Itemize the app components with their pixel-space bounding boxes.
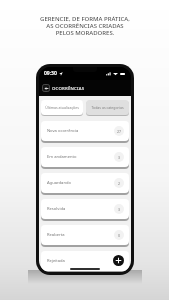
staticText: GERENCIE, DE FORMA PRÁTICA, AS OCORRÊNCI… bbox=[40, 15, 130, 37]
button[interactable]: Rejeitada bbox=[41, 251, 129, 271]
staticText: Resolvida bbox=[47, 206, 66, 212]
button[interactable]: Nova ocorrência bbox=[41, 121, 129, 141]
staticText: 1 bbox=[118, 259, 121, 264]
button[interactable]: Últimas atualizações bbox=[41, 100, 83, 115]
button[interactable]: Em andamento bbox=[41, 147, 129, 167]
staticText: 27 bbox=[117, 129, 122, 134]
button[interactable]: Aguardando bbox=[41, 173, 129, 193]
staticText: 3 bbox=[118, 155, 121, 160]
staticText: Reaberta bbox=[47, 232, 65, 238]
staticText: 2 bbox=[118, 181, 121, 186]
button[interactable]: Voltar bbox=[42, 84, 50, 92]
button[interactable]: Nova ocorrência bbox=[113, 255, 124, 266]
button[interactable]: Reaberta bbox=[41, 225, 129, 245]
staticText: OCORRÊNCIAS bbox=[52, 85, 85, 91]
staticText: Em andamento bbox=[47, 154, 77, 160]
staticText: 3 bbox=[118, 207, 121, 212]
staticText: Nova ocorrência bbox=[47, 128, 79, 134]
staticText: Todas as categorias bbox=[91, 105, 124, 110]
staticText: Rejeitada bbox=[47, 258, 65, 264]
staticText: 09:30 bbox=[44, 70, 57, 77]
button[interactable]: Resolvida bbox=[41, 199, 129, 219]
staticText: 0 bbox=[118, 233, 121, 238]
staticText: Últimas atualizações bbox=[45, 105, 79, 110]
staticText: Aguardando bbox=[47, 180, 71, 186]
button[interactable]: Todas as categorias bbox=[86, 100, 129, 115]
